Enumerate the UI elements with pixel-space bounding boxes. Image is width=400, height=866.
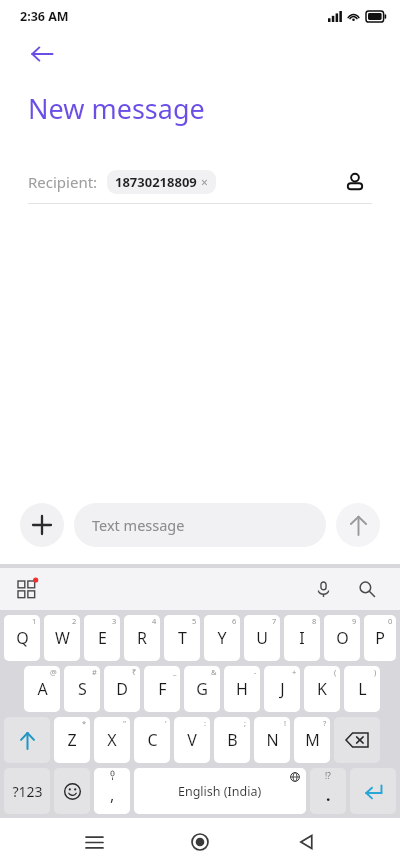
staticText: Q: [16, 627, 29, 649]
staticText: 0: [388, 616, 393, 626]
button[interactable]: W: [44, 615, 80, 661]
staticText: ": [123, 718, 127, 728]
button[interactable]: Recents: [67, 818, 121, 866]
button[interactable]: X: [94, 717, 130, 763]
staticText: 7: [272, 616, 277, 626]
staticText: ×: [201, 174, 208, 190]
staticText: 3: [112, 616, 117, 626]
staticText: !?: [325, 770, 331, 781]
staticText: J: [280, 678, 285, 700]
button[interactable]: ?123: [4, 768, 50, 814]
button[interactable]: O: [324, 615, 360, 661]
staticText: L: [358, 678, 367, 700]
staticText: ;: [244, 718, 247, 728]
staticText: D: [116, 678, 128, 700]
staticText: U: [256, 627, 268, 649]
staticText: ): [374, 667, 377, 677]
button[interactable]: A: [24, 666, 60, 712]
button[interactable]: .: [310, 768, 346, 814]
staticText: ': [165, 718, 167, 728]
button[interactable]: ,: [94, 768, 130, 814]
staticText: V: [187, 729, 197, 751]
button[interactable]: F: [144, 666, 180, 712]
button[interactable]: key: [334, 717, 380, 763]
staticText: R: [137, 627, 147, 649]
button[interactable]: C: [134, 717, 170, 763]
button[interactable]: N: [254, 717, 290, 763]
staticText: 18730218809: [115, 173, 197, 191]
button[interactable]: R: [124, 615, 160, 661]
button[interactable]: Contacts: [338, 165, 372, 199]
button[interactable]: key: [4, 717, 50, 763]
button[interactable]: Home: [173, 818, 227, 866]
staticText: &: [211, 667, 217, 677]
button[interactable]: Q: [4, 615, 40, 661]
button[interactable]: J: [264, 666, 300, 712]
button[interactable]: Add attachment: [20, 503, 64, 547]
staticText: K: [317, 678, 327, 700]
staticText: 6: [232, 616, 237, 626]
staticText: 2: [72, 616, 77, 626]
button[interactable]: Toolbox: [18, 574, 48, 604]
staticText: P: [375, 627, 385, 649]
staticText: Text message: [92, 515, 185, 535]
staticText: -: [254, 667, 257, 677]
staticText: English (India): [178, 783, 262, 800]
staticText: Y: [217, 627, 227, 649]
button[interactable]: Voice input: [308, 574, 338, 604]
button[interactable]: Text message: [74, 503, 326, 547]
staticText: F: [158, 678, 167, 700]
button[interactable]: M: [294, 717, 330, 763]
staticText: X: [107, 729, 117, 751]
staticText: ₹: [132, 667, 137, 677]
button[interactable]: key: [350, 768, 396, 814]
staticText: ?123: [12, 782, 43, 801]
button[interactable]: Back: [279, 818, 333, 866]
staticText: T: [178, 627, 187, 649]
button[interactable]: key: [54, 768, 90, 814]
button[interactable]: Z: [54, 717, 90, 763]
staticText: New message: [28, 90, 205, 127]
staticText: 4: [152, 616, 157, 626]
button[interactable]: English (India): [134, 768, 306, 814]
staticText: +: [292, 667, 297, 677]
staticText: W: [55, 627, 70, 649]
button[interactable]: B: [214, 717, 250, 763]
button[interactable]: K: [304, 666, 340, 712]
staticText: Recipient:: [28, 172, 98, 192]
staticText: 9: [352, 616, 357, 626]
staticText: 8: [312, 616, 317, 626]
button[interactable]: U: [244, 615, 280, 661]
button[interactable]: Y: [204, 615, 240, 661]
button[interactable]: H: [224, 666, 260, 712]
staticText: O: [336, 627, 349, 649]
staticText: M: [305, 729, 320, 751]
button[interactable]: 18730218809: [107, 170, 216, 194]
staticText: !: [284, 718, 287, 728]
button[interactable]: D: [104, 666, 140, 712]
staticText: E: [98, 627, 107, 649]
button[interactable]: V: [174, 717, 210, 763]
button[interactable]: P: [364, 615, 396, 661]
button[interactable]: G: [184, 666, 220, 712]
staticText: 1: [32, 616, 37, 626]
button[interactable]: I: [284, 615, 320, 661]
staticText: :: [204, 718, 207, 728]
staticText: ?: [323, 718, 327, 728]
staticText: 5: [192, 616, 197, 626]
button[interactable]: Send: [336, 503, 380, 547]
staticText: N: [266, 729, 279, 751]
button[interactable]: E: [84, 615, 120, 661]
staticText: A: [37, 678, 48, 700]
staticText: I: [299, 627, 305, 649]
staticText: H: [236, 678, 248, 700]
staticText: ,: [110, 784, 115, 806]
staticText: Z: [67, 729, 77, 751]
staticText: #: [92, 667, 97, 677]
button[interactable]: L: [344, 666, 380, 712]
button[interactable]: S: [64, 666, 100, 712]
button[interactable]: Back: [20, 32, 64, 76]
button[interactable]: T: [164, 615, 200, 661]
button[interactable]: Search: [352, 574, 382, 604]
staticText: C: [147, 729, 158, 751]
